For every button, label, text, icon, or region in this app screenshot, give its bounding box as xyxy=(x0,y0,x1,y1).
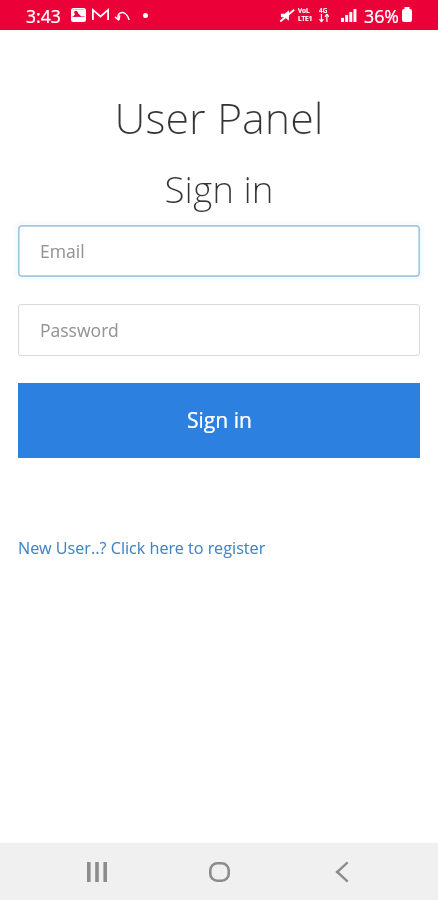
staticText: Sign in xyxy=(187,406,252,435)
staticText: VoL xyxy=(298,6,310,15)
staticText: New User..? Click here to register xyxy=(18,537,266,559)
button[interactable]: Home xyxy=(192,848,247,895)
staticText: 3:43 xyxy=(26,4,61,28)
staticText: 4G xyxy=(319,6,328,15)
button[interactable]: Recents xyxy=(69,848,124,895)
button[interactable]: New User..? Click here to register xyxy=(18,537,266,559)
staticText: 36% xyxy=(364,4,400,28)
staticText: LTE1 xyxy=(298,14,313,23)
button[interactable]: Back xyxy=(314,848,369,895)
button[interactable]: Email xyxy=(18,225,420,277)
button[interactable]: Sign in xyxy=(18,383,420,458)
staticText: Email xyxy=(40,239,85,263)
button[interactable]: Password xyxy=(18,304,420,356)
staticText: Password xyxy=(40,318,119,342)
staticText: User Panel xyxy=(0,88,438,147)
staticText: Sign in xyxy=(0,164,438,214)
